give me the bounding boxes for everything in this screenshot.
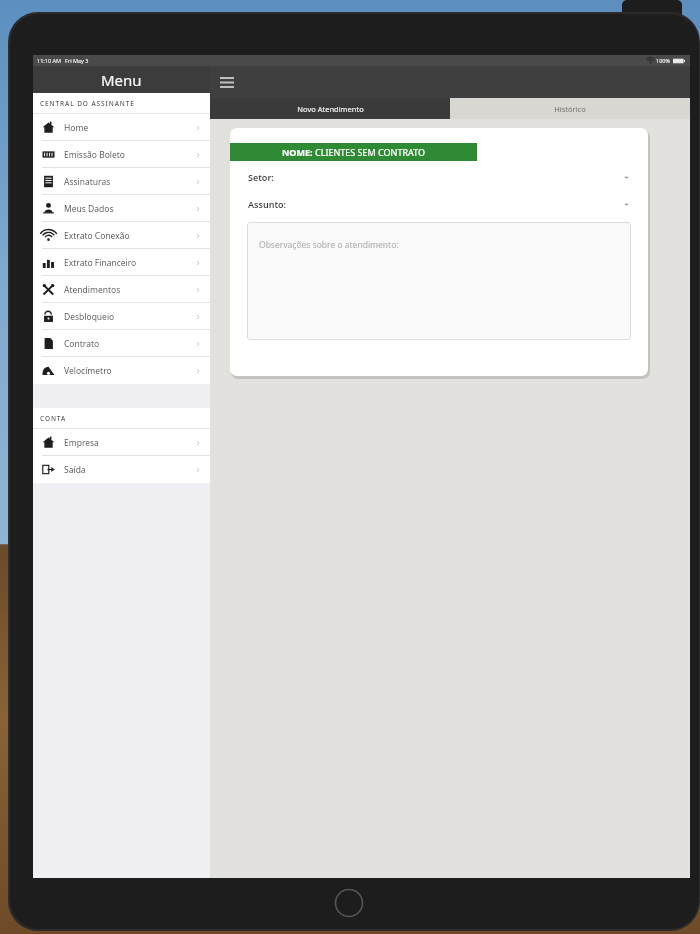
button[interactable]: Extrato Financeiro — [33, 249, 210, 276]
staticText: Velocímetro — [64, 365, 112, 377]
staticText: Novo Atendimento — [297, 104, 364, 114]
button[interactable]: Meus Dados — [33, 195, 210, 222]
staticText: Desbloqueio — [64, 311, 115, 323]
button[interactable]: Open navigation menu — [216, 71, 238, 93]
staticText: Meus Dados — [64, 203, 114, 215]
staticText: Saída — [64, 464, 86, 476]
button[interactable]: Contrato — [33, 330, 210, 357]
staticText: Assunto: — [248, 198, 287, 210]
staticText: Empresa — [64, 437, 99, 449]
staticText: Home — [64, 122, 89, 134]
button[interactable]: Histórico — [450, 98, 690, 119]
staticText: 11:10 AM — [37, 57, 61, 64]
staticText: Extrato Conexão — [64, 230, 130, 242]
button[interactable]: Atendimentos — [33, 276, 210, 303]
button[interactable]: Assinaturas — [33, 168, 210, 195]
button[interactable]: Observações sobre o atendimento: — [247, 222, 631, 340]
button[interactable]: Extrato Conexão — [33, 222, 210, 249]
staticText: Assinaturas — [64, 176, 111, 188]
button[interactable]: Empresa — [33, 429, 210, 456]
staticText: Observações sobre o atendimento: — [259, 239, 399, 251]
staticText: CLIENTES SEM CONTRATO — [315, 146, 425, 158]
staticText: Emissão Boleto — [64, 149, 125, 161]
button[interactable]: Desbloqueio — [33, 303, 210, 330]
staticText: 100% — [656, 57, 671, 64]
staticText: Histórico — [554, 104, 586, 114]
staticText: Menu — [101, 70, 142, 90]
staticText: CENTRAL DO ASSINANTE — [40, 99, 135, 108]
button[interactable]: Novo Atendimento — [210, 98, 450, 119]
button[interactable]: Saída — [33, 456, 210, 483]
staticText: Atendimentos — [64, 284, 121, 296]
staticText: Setor: — [248, 171, 274, 183]
button[interactable]: Setor: — [248, 169, 630, 185]
staticText: Contrato — [64, 338, 100, 350]
staticText: Extrato Financeiro — [64, 257, 137, 269]
button[interactable]: Assunto: — [248, 196, 630, 212]
staticText: Fri May 3 — [65, 57, 89, 64]
button[interactable]: Velocímetro — [33, 357, 210, 384]
staticText: CONTA — [40, 414, 67, 423]
button[interactable]: Home — [33, 114, 210, 141]
button[interactable]: Emissão Boleto — [33, 141, 210, 168]
staticText: NOME: — [282, 146, 315, 158]
